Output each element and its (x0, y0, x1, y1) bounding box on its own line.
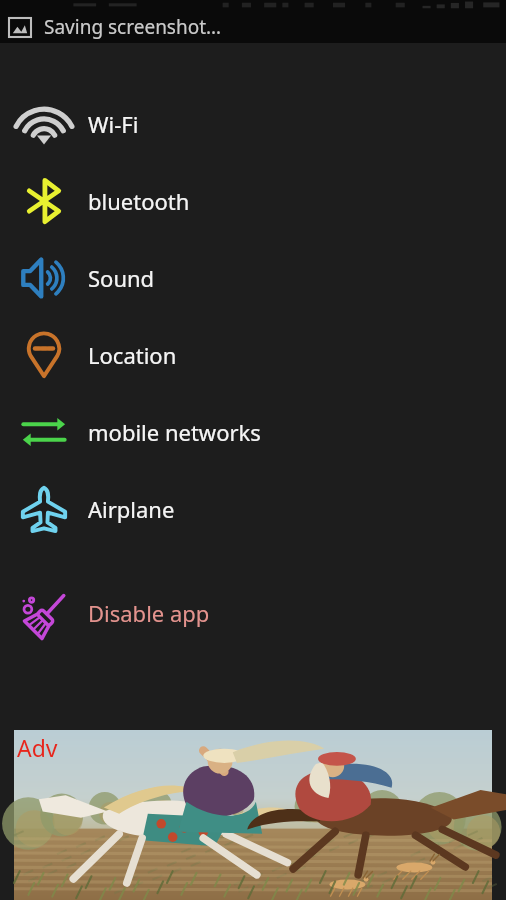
staticText: mobile networks (88, 417, 261, 447)
staticText: Adv (17, 732, 58, 763)
staticText: Saving screenshot… (44, 14, 222, 40)
button[interactable]: Wi-Fi (0, 85, 506, 162)
button[interactable]: Airplane (0, 470, 506, 547)
staticText: Wi-Fi (88, 109, 139, 139)
button[interactable]: bluetooth (0, 162, 506, 239)
staticText: Airplane (88, 494, 175, 524)
staticText: Disable app (88, 598, 210, 628)
button[interactable]: Advertisement banner (14, 730, 492, 900)
button[interactable]: Location (0, 316, 506, 393)
button[interactable]: Disable app (0, 574, 506, 651)
staticText: Sound (88, 263, 155, 293)
button[interactable]: Sound (0, 239, 506, 316)
staticText: bluetooth (88, 186, 190, 216)
staticText: Location (88, 340, 177, 370)
button[interactable]: mobile networks (0, 393, 506, 470)
